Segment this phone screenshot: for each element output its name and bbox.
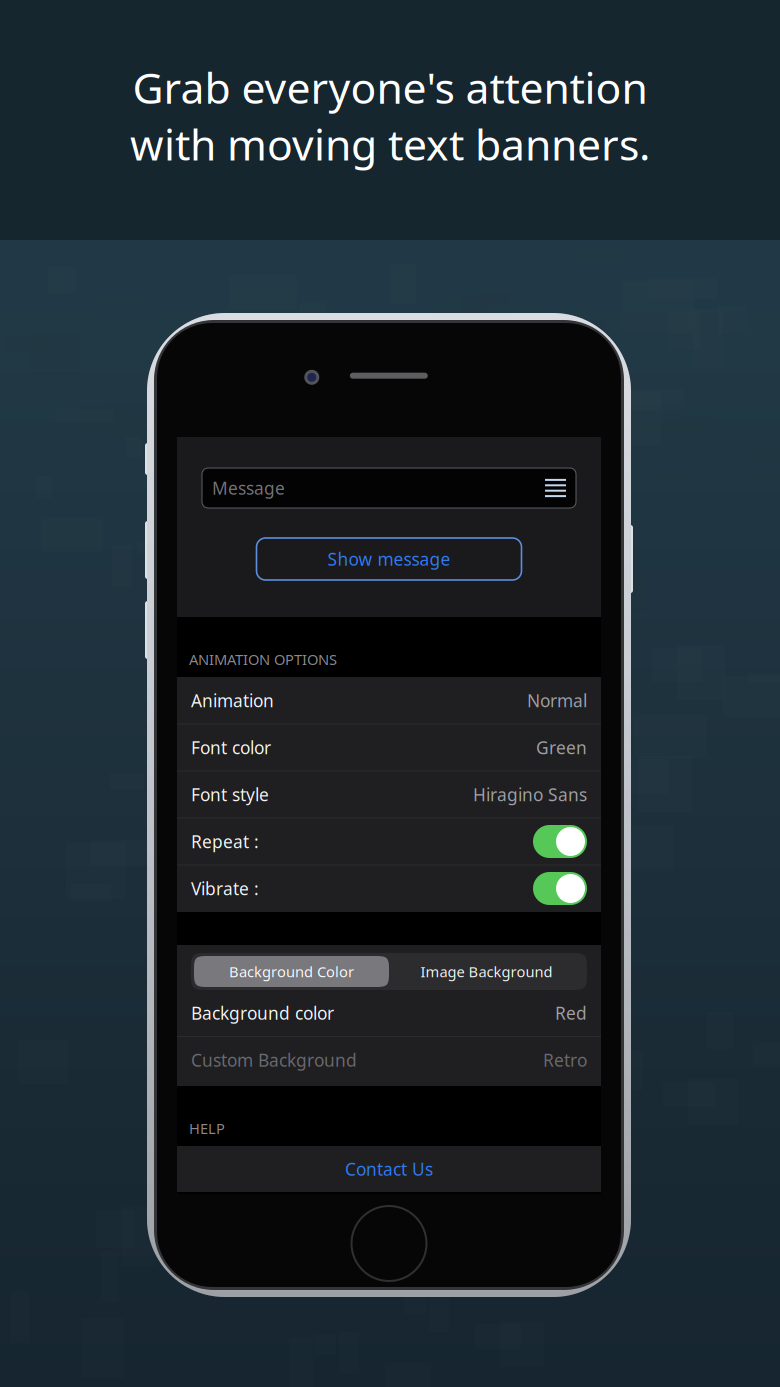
staticText: Animation — [191, 689, 274, 712]
staticText: Grab everyone's attention — [132, 59, 647, 115]
button[interactable]: Background Color — [194, 956, 389, 987]
staticText: HELP — [189, 1118, 225, 1138]
staticText: Background Color — [229, 962, 354, 981]
staticText: Image Background — [420, 962, 552, 981]
staticText: Font style — [191, 783, 269, 806]
button[interactable]: Background color — [177, 990, 601, 1036]
button[interactable]: Font style — [177, 771, 601, 817]
staticText: Repeat : — [191, 830, 259, 853]
button[interactable]: Contact Us — [177, 1146, 601, 1192]
staticText: Red — [555, 1001, 587, 1024]
staticText: Message — [212, 476, 285, 499]
button[interactable]: Animation — [177, 677, 601, 723]
staticText: Retro — [543, 1048, 587, 1071]
button[interactable]: Font color — [177, 724, 601, 770]
staticText: ANIMATION OPTIONS — [189, 649, 337, 669]
staticText: Hiragino Sans — [473, 783, 587, 806]
button[interactable]: Message — [202, 468, 576, 508]
button[interactable]: Show message — [256, 538, 521, 580]
staticText: with moving text banners. — [130, 115, 650, 172]
staticText: Font color — [191, 736, 271, 759]
staticText: Vibrate : — [191, 877, 259, 900]
button[interactable]: Custom Background — [177, 1037, 601, 1083]
button[interactable]: Image Background — [389, 956, 584, 987]
staticText: Background color — [191, 1001, 334, 1024]
staticText: Custom Background — [191, 1048, 357, 1071]
button[interactable]: Vibrate : — [177, 865, 601, 911]
button[interactable]: Repeat : — [177, 818, 601, 864]
staticText: Contact Us — [345, 1157, 433, 1180]
staticText: Green — [536, 736, 587, 759]
staticText: Show message — [327, 547, 450, 570]
staticText: Normal — [527, 689, 587, 712]
